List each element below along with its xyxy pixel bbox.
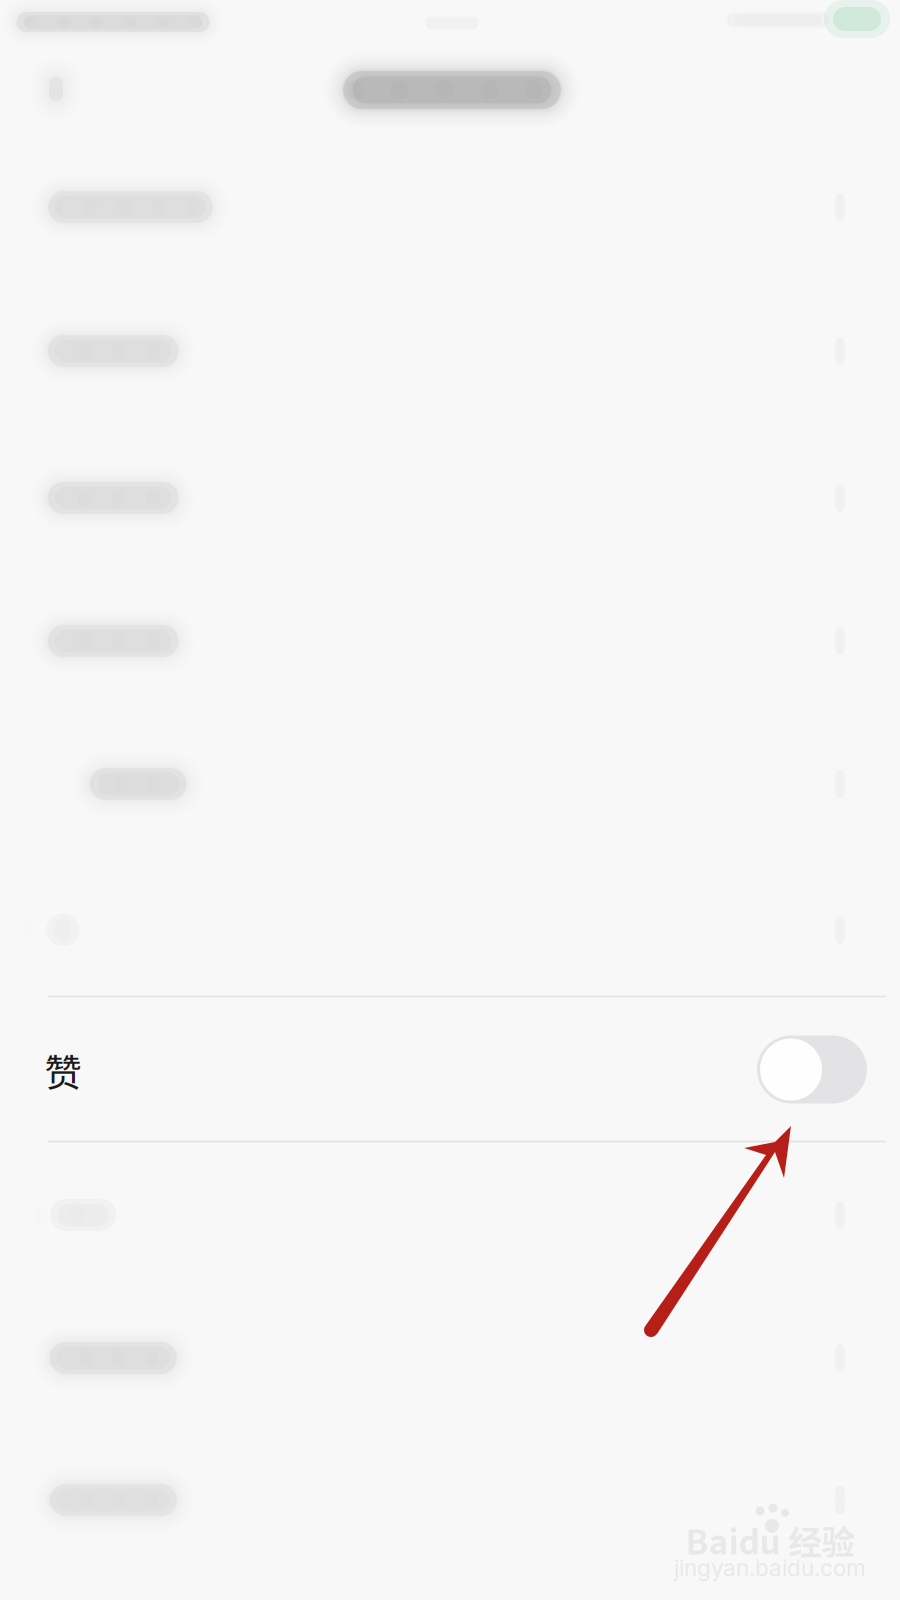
button[interactable]: Setting [0,279,900,423]
button[interactable]: 赞 [0,995,900,1142]
button[interactable]: Setting [0,712,900,856]
button[interactable]: Setting [0,135,900,279]
staticText: Baidu 经验 [685,1516,854,1564]
staticText: jingyan.baidu.com [674,1554,866,1582]
button[interactable]: Setting [0,426,900,570]
staticText: 赞 [44,1043,81,1098]
button[interactable]: Setting [0,569,900,713]
button[interactable]: Setting [0,1143,900,1287]
button[interactable]: Setting [0,1286,900,1430]
button[interactable]: Back [4,39,108,139]
button[interactable]: Setting [0,1428,900,1572]
